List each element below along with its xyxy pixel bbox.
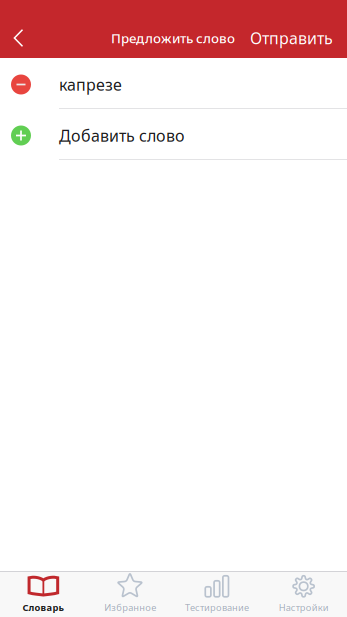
staticText: Тестирование (185, 601, 249, 614)
button[interactable]: Добавить слово (0, 109, 347, 160)
staticText: Словарь (22, 601, 64, 614)
button[interactable]: Back (0, 18, 37, 58)
staticText: капрезе (59, 74, 122, 95)
button[interactable]: Отправить (250, 18, 347, 58)
button[interactable]: Избранное (87, 572, 174, 617)
button[interactable]: капрезе (0, 58, 347, 109)
button[interactable]: Словарь (0, 572, 87, 617)
staticText: Настройки (279, 601, 329, 614)
button[interactable]: Настройки (260, 572, 347, 617)
staticText: Предложить слово (111, 29, 235, 47)
button[interactable]: Тестирование (173, 572, 260, 617)
staticText: Избранное (104, 601, 156, 614)
staticText: Отправить (250, 27, 333, 49)
staticText: Добавить слово (59, 125, 185, 146)
